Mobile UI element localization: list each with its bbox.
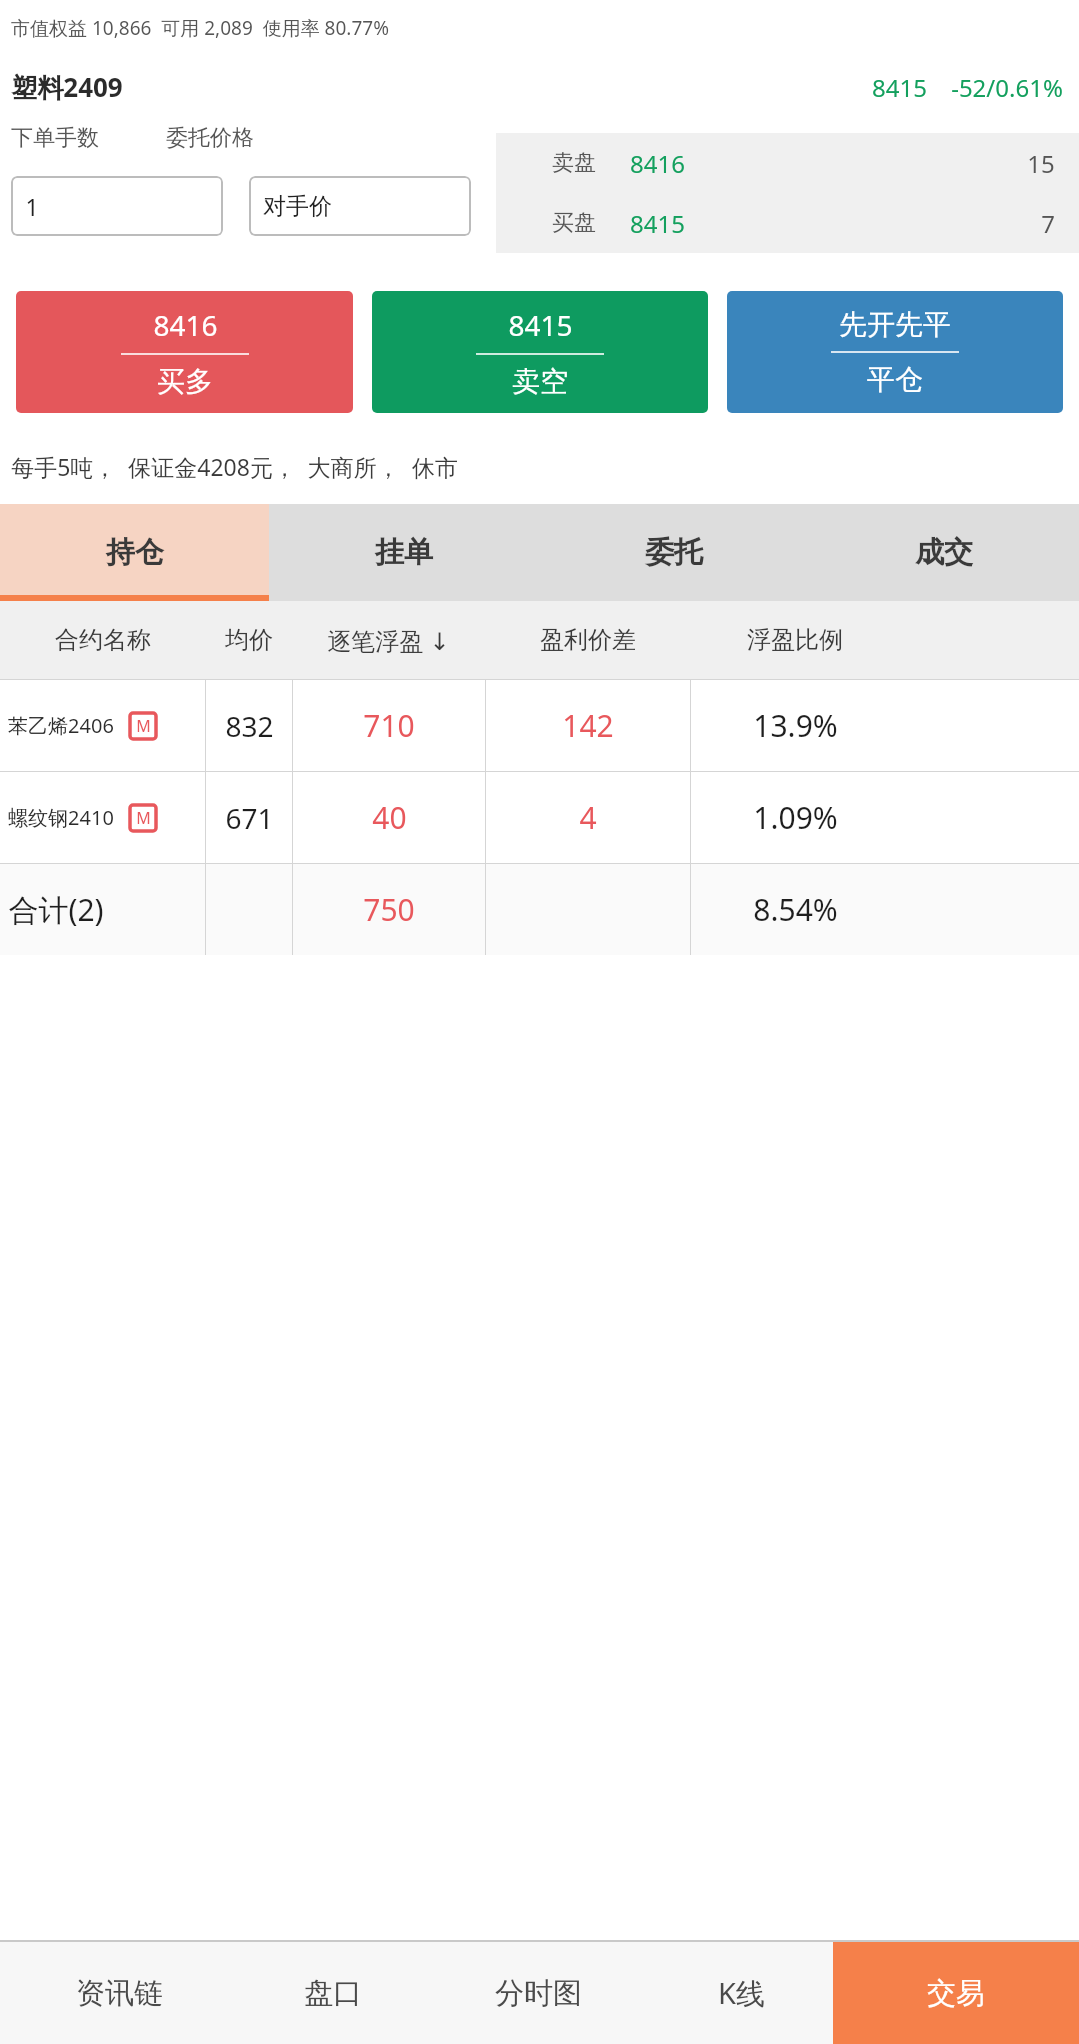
staticText: 挂单 <box>375 534 433 571</box>
staticText: 832 <box>225 707 274 745</box>
button[interactable]: 8416 <box>16 291 353 413</box>
staticText: 逐笔浮盈 ↓ <box>327 624 450 657</box>
staticText: 卖空 <box>512 364 568 399</box>
button[interactable]: 买盘 <box>496 193 1079 253</box>
staticText: 先开先平 <box>839 307 951 342</box>
staticText: 8.54% <box>753 889 838 930</box>
staticText: 750 <box>363 889 415 930</box>
button[interactable]: 卖盘 <box>496 133 1079 193</box>
staticText: 买盘 <box>552 209 596 237</box>
button[interactable]: 螺纹钢2410 <box>0 772 1079 863</box>
staticText: 成交 <box>915 534 973 571</box>
staticText: 平仓 <box>867 362 923 397</box>
button[interactable]: 苯乙烯2406 <box>0 680 1079 771</box>
button[interactable]: 交易 <box>833 1942 1079 2044</box>
staticText: 盘口 <box>304 1975 362 2012</box>
button[interactable]: 持仓 <box>0 504 269 601</box>
staticText: 市值权益 10,866 可用 2,089 使用率 80.77% <box>11 15 389 41</box>
button[interactable]: 先开先平 <box>727 291 1063 413</box>
staticText: 资讯链 <box>76 1975 163 2012</box>
staticText: 4 <box>579 797 597 838</box>
staticText: 塑料2409 <box>11 69 123 105</box>
staticText: 合计(2) <box>8 889 104 930</box>
staticText: -52/0.61% <box>951 71 1063 104</box>
button[interactable]: 资讯链 <box>0 1942 238 2044</box>
button[interactable]: 8415 <box>372 291 708 413</box>
staticText: 15 <box>1027 147 1055 180</box>
other: Margin <box>130 713 156 739</box>
staticText: 8415 <box>872 71 927 104</box>
button[interactable]: 1 <box>11 176 223 236</box>
staticText: 分时图 <box>495 1975 582 2012</box>
staticText: 8416 <box>630 147 685 180</box>
staticText: 13.9% <box>753 705 838 746</box>
staticText: 委托价格 <box>166 124 254 152</box>
other: Margin <box>130 805 156 831</box>
button[interactable]: 分时图 <box>427 1942 650 2044</box>
button[interactable]: 对手价 <box>249 176 471 236</box>
button[interactable]: 挂单 <box>269 504 539 601</box>
staticText: 1.09% <box>753 797 838 838</box>
staticText: 40 <box>372 797 407 838</box>
staticText: 下单手数 <box>11 124 99 152</box>
staticText: 8415 <box>508 306 573 344</box>
staticText: 7 <box>1041 207 1055 240</box>
staticText: 8416 <box>153 306 218 344</box>
staticText: 8415 <box>630 207 685 240</box>
button[interactable]: K线 <box>650 1942 833 2044</box>
staticText: 浮盈比例 <box>747 625 843 655</box>
staticText: 710 <box>363 705 415 746</box>
staticText: 合约名称 <box>55 625 151 655</box>
button[interactable]: 盘口 <box>238 1942 427 2044</box>
staticText: 142 <box>562 705 614 746</box>
staticText: M <box>136 715 151 737</box>
staticText: 1 <box>25 191 39 222</box>
staticText: 持仓 <box>106 534 164 571</box>
staticText: 盈利价差 <box>540 625 636 655</box>
staticText: 对手价 <box>263 192 332 221</box>
staticText: 均价 <box>225 625 273 655</box>
button[interactable]: 委托 <box>539 504 809 601</box>
staticText: 每手5吨， 保证金4208元， 大商所， 休市 <box>11 451 458 482</box>
button[interactable]: 成交 <box>809 504 1079 601</box>
staticText: 交易 <box>927 1975 985 2012</box>
staticText: 苯乙烯2406 <box>8 712 114 739</box>
staticText: 买多 <box>157 364 213 399</box>
staticText: K线 <box>718 1973 765 2013</box>
staticText: 卖盘 <box>552 149 596 177</box>
staticText: M <box>136 807 151 829</box>
staticText: 螺纹钢2410 <box>8 804 114 831</box>
staticText: 委托 <box>645 534 703 571</box>
staticText: 671 <box>225 799 274 837</box>
